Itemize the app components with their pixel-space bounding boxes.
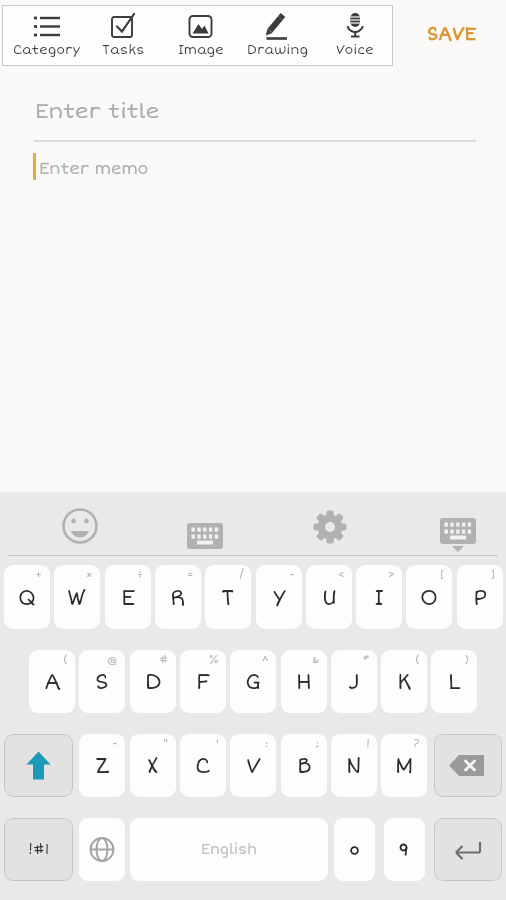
staticText: Enter memo [39,159,149,179]
button[interactable]: > [356,565,402,629]
staticText: J [348,668,360,695]
staticText: P [473,584,488,611]
button[interactable]: ! [331,734,377,797]
button[interactable]: @ [79,650,125,713]
button[interactable]: English [130,818,328,881]
button[interactable] [306,500,354,548]
staticText: SAVE [427,23,476,45]
button[interactable]: Drawing [239,12,316,58]
button[interactable]: × [54,565,100,629]
staticText: L [448,668,461,695]
button[interactable] [434,734,502,797]
staticText: X [147,752,159,779]
button[interactable]: % [180,650,226,713]
staticText: Tasks [102,42,145,58]
button[interactable] [181,500,229,548]
button[interactable]: ? [381,734,427,797]
staticText: @ [107,653,118,667]
staticText: N [346,752,362,779]
staticText: < [338,568,345,582]
staticText: ( [415,653,420,667]
staticText: U [322,584,337,611]
button[interactable]: Voice [316,12,393,58]
button[interactable]: ; [281,734,327,797]
staticText: B [297,752,312,779]
button[interactable]: # [130,650,176,713]
button[interactable]: - [256,565,302,629]
staticText: Voice [336,42,374,58]
button[interactable]: Category [8,12,85,58]
button[interactable]: Image [162,12,239,58]
staticText: " [163,737,169,751]
staticText: S [95,668,109,695]
button[interactable]: - [79,734,125,797]
button[interactable]: Tasks [85,12,162,58]
staticText: × [86,568,93,582]
staticText: F [196,668,210,695]
staticText: H [296,668,312,695]
button[interactable] [56,500,104,548]
button[interactable] [434,500,482,548]
staticText: K [397,668,412,695]
button[interactable]: SAVE [420,18,482,50]
staticText: ? [413,737,420,751]
staticText: Q [18,584,37,611]
button[interactable]: ] [457,565,503,629]
staticText: # [159,653,169,667]
button[interactable]: ^ [230,650,276,713]
button[interactable]: ÷ [105,565,151,629]
staticText: ) [465,653,470,667]
button[interactable]: & [281,650,327,713]
button[interactable]: ) [431,650,477,713]
staticText: O [420,584,438,611]
button[interactable]: < [306,565,352,629]
staticText: A [44,668,61,695]
staticText: ^ [262,653,269,667]
staticText: + [35,568,43,582]
staticText: : [265,737,269,751]
staticText: = [187,568,194,582]
staticText: E [121,584,136,611]
staticText: - [112,737,118,751]
button[interactable]: : [230,734,276,797]
staticText: ( [63,653,68,667]
staticText: Image [178,42,224,58]
staticText: % [209,653,219,667]
button[interactable]: + [4,565,50,629]
staticText: Y [273,584,286,611]
button[interactable] [334,818,375,881]
staticText: Enter title [35,98,160,124]
button[interactable]: / [205,565,251,629]
staticText: Category [13,42,81,58]
staticText: ! [366,737,370,751]
button[interactable]: * [331,650,377,713]
staticText: ] [491,568,496,582]
staticText: W [67,584,87,611]
button[interactable]: ( [29,650,75,713]
staticText: English [201,841,257,858]
button[interactable] [434,818,502,881]
staticText: T [221,584,235,611]
staticText: ÷ [137,568,144,582]
staticText: R [170,584,186,611]
staticText: Z [95,752,110,779]
button[interactable]: = [155,565,201,629]
button[interactable] [79,818,125,881]
staticText: D [145,668,162,695]
staticText: G [245,668,261,695]
button[interactable]: " [130,734,176,797]
staticText: & [312,653,320,667]
staticText: > [388,568,395,582]
staticText: I [374,584,384,611]
button[interactable]: ( [381,650,427,713]
staticText: - [289,568,295,582]
staticText: !#1 [28,841,50,858]
staticText: * [363,653,370,667]
staticText: M [395,752,414,779]
button[interactable]: !#1 [4,818,73,881]
button[interactable] [384,818,425,881]
button[interactable] [4,734,73,797]
staticText: ' [216,737,219,751]
button[interactable]: [ [406,565,452,629]
button[interactable]: ' [180,734,226,797]
